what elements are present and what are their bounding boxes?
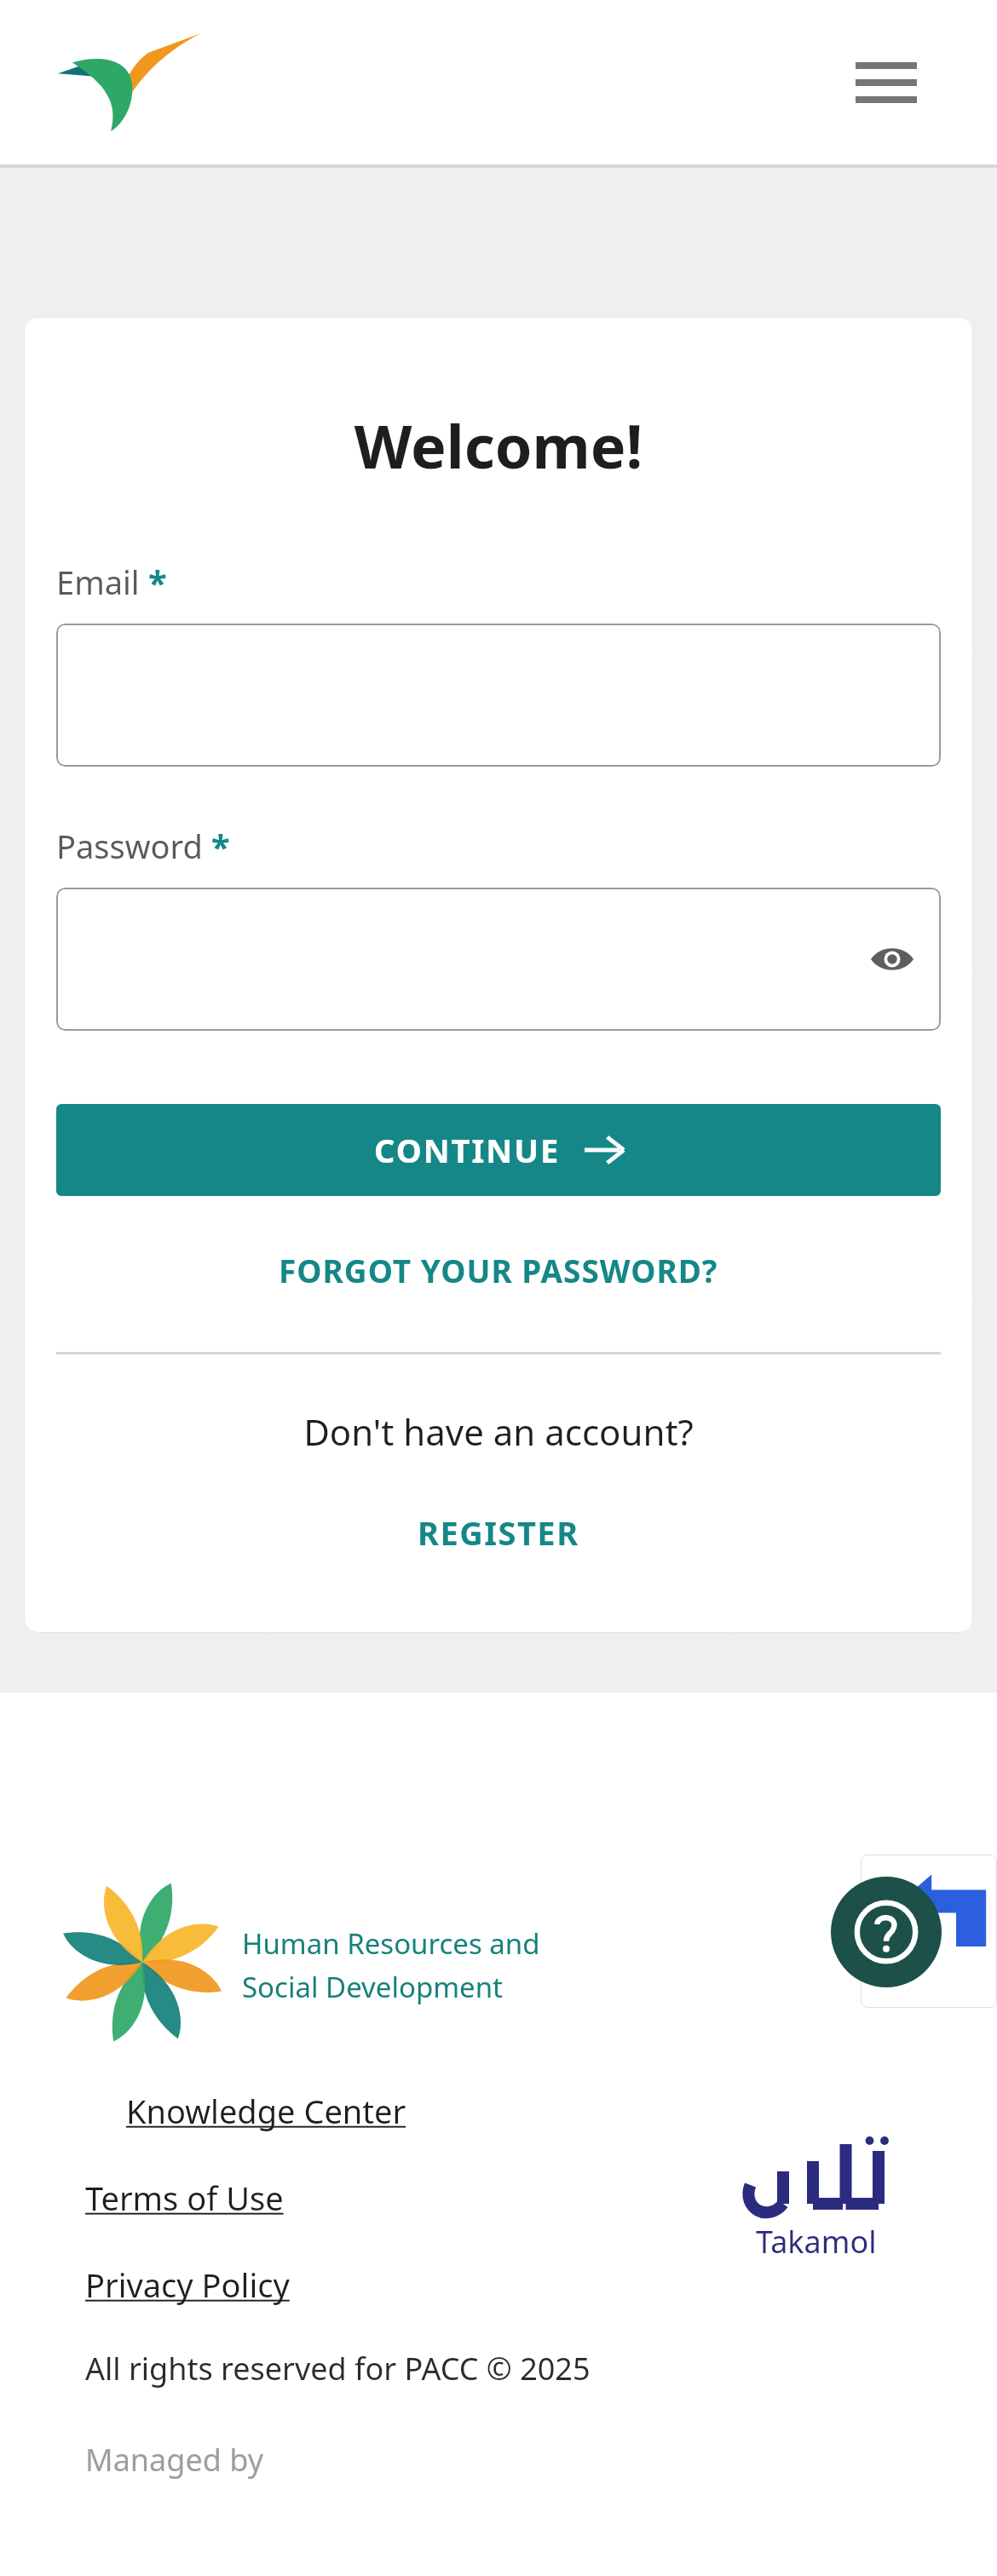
staticText: Human Resources and [242, 1924, 540, 1963]
staticText: Welcome! [56, 405, 941, 486]
button[interactable]: REGISTER [56, 1500, 941, 1565]
button[interactable]: Terms of Use [85, 2176, 284, 2220]
staticText: * [148, 559, 167, 605]
button[interactable]: FORGOT YOUR PASSWORD? [56, 1235, 941, 1305]
staticText: Don't have an account? [56, 1407, 941, 1456]
staticText: Password [56, 824, 203, 868]
staticText: REGISTER [418, 1510, 579, 1555]
staticText: All rights reserved for PACC © 2025 [85, 2348, 591, 2389]
staticText: Terms of Use [85, 2176, 284, 2220]
button[interactable]: Menu [844, 40, 929, 125]
staticText: Privacy Policy [85, 2263, 290, 2307]
button[interactable]: Privacy Policy [85, 2263, 290, 2307]
staticText: CONTINUE [374, 1128, 561, 1172]
staticText: * [211, 823, 230, 869]
staticText: Knowledge Center [126, 2089, 406, 2133]
button[interactable]: Help [831, 1877, 942, 1987]
button[interactable]: Show password [56, 888, 941, 1031]
staticText: Takamol [756, 2221, 877, 2263]
staticText: Email [56, 560, 140, 604]
button[interactable]: CONTINUE [56, 1104, 941, 1196]
button[interactable] [56, 624, 941, 767]
button[interactable]: Knowledge Center [126, 2089, 406, 2133]
staticText: Social Development [242, 1968, 504, 2006]
staticText: Managed by [85, 2439, 264, 2481]
staticText: FORGOT YOUR PASSWORD? [279, 1249, 718, 1291]
button[interactable]: Show password [862, 929, 922, 989]
